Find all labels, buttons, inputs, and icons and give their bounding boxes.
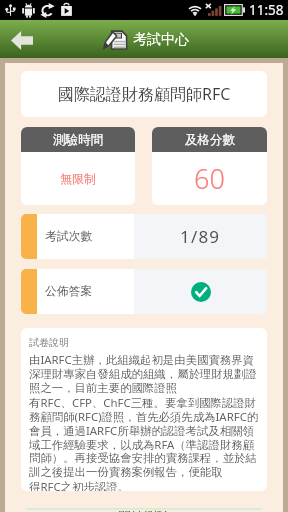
staticText: 及格分數 [185, 132, 235, 148]
staticText: 1/89 [180, 225, 221, 248]
button[interactable]: Back [0, 20, 46, 58]
button[interactable]: 公佈答案 [21, 269, 267, 314]
button[interactable]: 考試次數 [21, 214, 267, 259]
button[interactable]: 開始測驗 [26, 508, 262, 512]
staticText: 考試次數 [45, 229, 93, 244]
staticText: 公佈答案 [45, 284, 93, 299]
staticText: 開始測驗 [118, 508, 170, 512]
staticText: 試卷說明 [29, 336, 69, 349]
staticText: 無限制 [60, 171, 96, 186]
staticText: 由IARFC主辦，此組織起初是由美國實務界資 深理財專家自發組成的組織，屬於理財… [29, 352, 259, 491]
staticText: 11:58 [249, 1, 284, 19]
staticText: 國際認證財務顧問師RFC [58, 83, 231, 105]
staticText: 考試中心 [133, 31, 189, 49]
staticText: 60 [194, 160, 225, 197]
staticText: 測驗時間 [53, 132, 103, 148]
